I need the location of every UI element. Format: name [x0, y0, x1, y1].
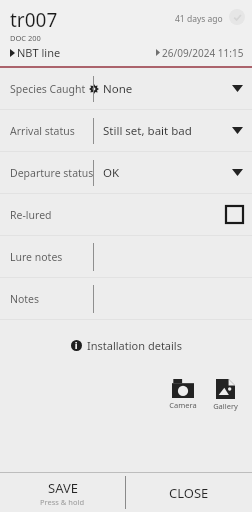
staticText: Still set, bait bad	[103, 123, 232, 139]
button[interactable]: Camera	[167, 377, 199, 412]
staticText: Lure notes	[10, 250, 63, 264]
button[interactable]: Gallery	[211, 377, 240, 413]
button[interactable]: Lure notes	[0, 236, 252, 277]
staticText: Re-lured	[10, 208, 52, 222]
button[interactable]: Re-lured	[0, 194, 252, 235]
staticText: Notes	[10, 292, 40, 306]
staticText: None	[103, 81, 232, 97]
other: Synced	[229, 9, 245, 25]
staticText: SAVE	[48, 479, 78, 497]
staticText: 41 days ago	[175, 13, 223, 25]
staticText: CLOSE	[169, 484, 209, 502]
staticText: DOC 200	[10, 33, 41, 43]
staticText: Installation details	[87, 338, 182, 353]
button[interactable]: Arrival status	[0, 110, 252, 151]
staticText: Departure status	[10, 166, 94, 180]
button[interactable]: Notes	[0, 278, 252, 319]
button[interactable]: Departure status	[0, 152, 252, 193]
staticText: 26/09/2024 11:15	[162, 46, 244, 60]
staticText: tr007	[10, 7, 58, 33]
staticText: Species Caught	[10, 82, 86, 96]
staticText: OK	[103, 165, 232, 181]
button[interactable]: CLOSE	[126, 473, 252, 512]
button[interactable]: i	[0, 334, 252, 357]
staticText: Arrival status	[10, 124, 75, 138]
staticText: Camera	[169, 400, 197, 410]
button[interactable]: SAVE	[0, 473, 125, 512]
staticText: i	[75, 340, 78, 351]
staticText: Gallery	[213, 401, 238, 411]
button[interactable]: Species Caught	[0, 68, 252, 109]
staticText: NBT line	[17, 45, 61, 60]
staticText: Press & hold	[40, 497, 85, 507]
